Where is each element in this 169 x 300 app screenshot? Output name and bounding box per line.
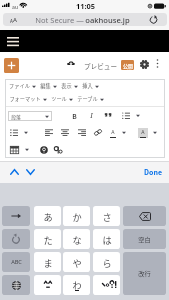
button[interactable] <box>153 131 157 134</box>
staticText: や <box>72 256 82 269</box>
staticText: 編集 <box>40 82 51 90</box>
button[interactable]: フォーマット <box>9 95 47 103</box>
button[interactable]: 編集 <box>40 82 57 90</box>
button[interactable]: な <box>63 229 90 249</box>
button[interactable]: Bold <box>69 109 80 122</box>
button[interactable]: Switch keyboard <box>2 275 30 295</box>
button[interactable]: 改行 <box>123 252 166 295</box>
button[interactable]: Save draft <box>64 56 78 70</box>
button[interactable]: 公開 <box>121 60 134 70</box>
button[interactable]: は <box>93 229 120 249</box>
button[interactable]: Previous field <box>7 161 21 183</box>
button[interactable]: Bulleted list <box>120 109 131 122</box>
button[interactable]: さ <box>93 206 120 226</box>
staticText: さ <box>102 210 112 223</box>
button[interactable]: Add block <box>4 58 19 73</box>
button[interactable]: Text size <box>8 13 19 26</box>
button[interactable]: Word count <box>53 143 64 156</box>
button[interactable]: Emoticon <box>34 275 61 295</box>
staticText: た <box>43 233 53 246</box>
button[interactable] <box>24 131 28 134</box>
button[interactable]: Reload <box>147 13 159 26</box>
button[interactable]: た <box>34 229 61 249</box>
staticText: な <box>72 233 82 246</box>
button[interactable]: Next field <box>23 161 37 183</box>
staticText: au <box>12 3 18 10</box>
staticText: A <box>141 128 145 136</box>
button[interactable]: 空白 <box>123 229 166 249</box>
button[interactable] <box>136 114 140 117</box>
button[interactable]: Align center <box>59 126 70 139</box>
staticText: A <box>10 18 13 24</box>
staticText: ABC <box>11 258 22 266</box>
staticText: Not Secure — <box>34 15 85 25</box>
staticText: 段落 <box>11 113 21 120</box>
button[interactable]: 表示 <box>61 82 78 90</box>
staticText: は <box>102 233 112 246</box>
staticText: フォーマット <box>9 95 41 103</box>
button[interactable]: Blockquote <box>102 109 113 122</box>
staticText: テーブル <box>77 95 98 103</box>
button[interactable]: More options <box>152 58 163 69</box>
button[interactable]: ファイル <box>9 82 36 90</box>
staticText: 公開 <box>123 62 133 69</box>
button[interactable]: Numbered list <box>8 126 19 139</box>
button[interactable]: ABC keyboard <box>2 252 30 272</box>
button[interactable]: Done <box>144 161 162 183</box>
button[interactable]: Insert link <box>92 126 103 139</box>
staticText: ファイル <box>9 82 30 90</box>
button[interactable]: プレビュー <box>84 55 117 76</box>
staticText: 改行 <box>138 269 151 278</box>
button[interactable]: Menu <box>3 30 23 52</box>
button[interactable]: Settings <box>138 58 150 70</box>
button[interactable]: Table <box>9 143 20 156</box>
button[interactable] <box>25 148 29 151</box>
staticText: 表示 <box>61 82 72 90</box>
staticText: わ <box>72 278 82 291</box>
button[interactable]: か <box>63 206 90 226</box>
staticText: ツール <box>51 95 67 103</box>
button[interactable] <box>93 275 120 295</box>
button[interactable]: Align right <box>76 126 87 139</box>
button[interactable]: 段落 <box>8 111 52 121</box>
staticText: 挿入 <box>82 82 93 90</box>
button[interactable] <box>122 131 126 134</box>
staticText: あ <box>43 210 53 223</box>
button[interactable]: ツール <box>51 95 73 103</box>
staticText: ら <box>102 256 112 269</box>
button[interactable]: や <box>63 252 90 272</box>
staticText: 11:05 <box>76 1 95 11</box>
staticText: ま <box>43 256 53 269</box>
staticText: I <box>90 111 93 120</box>
button[interactable]: テーブル <box>77 95 104 103</box>
button[interactable]: Text size <box>3 13 167 26</box>
staticText: プレビュー <box>84 61 117 71</box>
button[interactable]: Text color <box>107 126 118 139</box>
button[interactable]: Background color <box>137 126 148 139</box>
button[interactable]: Undo <box>2 229 30 249</box>
button[interactable]: Help <box>38 143 49 156</box>
button[interactable]: Align left <box>43 126 54 139</box>
button[interactable]: Delete <box>123 206 166 226</box>
button[interactable]: あ <box>34 206 61 226</box>
staticText: A <box>13 16 17 24</box>
staticText: Done <box>144 167 162 177</box>
staticText: A <box>111 128 115 136</box>
button[interactable]: わ <box>63 275 90 295</box>
button[interactable]: 挿入 <box>82 82 99 90</box>
staticText: か <box>72 210 82 223</box>
staticText: 空白 <box>138 235 151 244</box>
button[interactable]: ら <box>93 252 120 272</box>
staticText: oakhouse.jp <box>85 15 130 25</box>
button[interactable]: Italic <box>86 109 97 122</box>
button[interactable]: ま <box>34 252 61 272</box>
staticText: B <box>72 111 77 121</box>
button[interactable]: Tab <box>2 206 30 226</box>
